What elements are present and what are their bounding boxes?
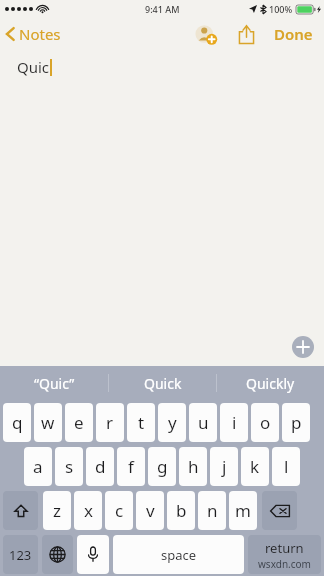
- staticText: t: [138, 411, 145, 434]
- button[interactable]: t: [127, 403, 155, 442]
- button[interactable]: v: [136, 491, 164, 530]
- button[interactable]: r: [96, 403, 124, 442]
- button[interactable]: d: [86, 447, 114, 486]
- button[interactable]: space: [113, 535, 244, 574]
- button[interactable]: Quickly: [217, 366, 324, 400]
- button[interactable]: f: [117, 447, 145, 486]
- staticText: Notes: [19, 24, 61, 44]
- staticText: o: [260, 411, 271, 434]
- staticText: h: [188, 455, 199, 478]
- staticText: q: [12, 411, 23, 434]
- staticText: v: [146, 499, 155, 522]
- button[interactable]: c: [105, 491, 133, 530]
- staticText: wsxdn.com: [258, 557, 311, 571]
- staticText: r: [106, 411, 114, 434]
- staticText: y: [168, 411, 177, 434]
- button[interactable]: h: [179, 447, 207, 486]
- staticText: z: [53, 499, 61, 522]
- button[interactable]: k: [241, 447, 269, 486]
- button[interactable]: b: [167, 491, 195, 530]
- staticText: n: [207, 499, 218, 522]
- button[interactable]: “Quic”: [0, 366, 108, 400]
- button[interactable]: Change keyboard: [42, 535, 73, 574]
- staticText: 9:41 AM: [145, 3, 180, 15]
- button[interactable]: Share: [233, 21, 259, 47]
- staticText: 100%: [269, 3, 293, 15]
- staticText: b: [176, 499, 187, 522]
- staticText: l: [284, 455, 289, 478]
- staticText: Quickly: [246, 374, 295, 393]
- button[interactable]: Dictate: [77, 535, 109, 574]
- button[interactable]: 123: [3, 535, 38, 574]
- staticText: i: [232, 411, 237, 434]
- button[interactable]: e: [65, 403, 93, 442]
- staticText: u: [198, 411, 209, 434]
- staticText: c: [115, 499, 124, 522]
- button[interactable]: y: [158, 403, 186, 442]
- button[interactable]: Add attachment: [292, 336, 314, 358]
- staticText: Quic: [17, 57, 50, 77]
- button[interactable]: o: [251, 403, 279, 442]
- button[interactable]: p: [282, 403, 310, 442]
- staticText: f: [128, 455, 134, 478]
- button[interactable]: m: [229, 491, 257, 530]
- button[interactable]: w: [34, 403, 62, 442]
- staticText: space: [161, 546, 197, 564]
- staticText: k: [250, 455, 260, 478]
- staticText: g: [157, 455, 168, 478]
- button[interactable]: z: [43, 491, 71, 530]
- staticText: j: [222, 455, 227, 478]
- button[interactable]: x: [74, 491, 102, 530]
- staticText: 123: [9, 546, 32, 564]
- button[interactable]: return: [248, 535, 321, 574]
- button[interactable]: j: [210, 447, 238, 486]
- button[interactable]: Done: [270, 19, 317, 49]
- button[interactable]: s: [55, 447, 83, 486]
- button[interactable]: i: [220, 403, 248, 442]
- button[interactable]: Shift: [3, 491, 38, 530]
- staticText: p: [291, 411, 302, 434]
- button[interactable]: Add people: [193, 21, 219, 47]
- staticText: a: [33, 455, 43, 478]
- button[interactable]: q: [3, 403, 31, 442]
- button[interactable]: n: [198, 491, 226, 530]
- staticText: s: [65, 455, 74, 478]
- button[interactable]: Quick: [109, 366, 216, 400]
- staticText: d: [95, 455, 106, 478]
- button[interactable]: g: [148, 447, 176, 486]
- staticText: m: [235, 499, 251, 522]
- button[interactable]: Notes: [0, 19, 69, 49]
- button[interactable]: Backspace: [262, 491, 297, 530]
- button[interactable]: l: [272, 447, 300, 486]
- staticText: e: [74, 411, 84, 434]
- staticText: Quick: [144, 374, 182, 393]
- staticText: “Quic”: [34, 374, 75, 393]
- staticText: return: [265, 539, 304, 557]
- staticText: w: [41, 411, 55, 434]
- staticText: Done: [274, 24, 313, 44]
- button[interactable]: a: [24, 447, 52, 486]
- staticText: x: [84, 499, 93, 522]
- button[interactable]: u: [189, 403, 217, 442]
